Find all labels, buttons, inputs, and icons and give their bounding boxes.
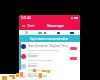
staticText: Chats: [27, 24, 35, 28]
button[interactable]: Video: [38, 32, 42, 34]
staticText: Jaimee: [28, 64, 37, 68]
staticText: Sounds good to me!: [28, 68, 52, 71]
button[interactable]: Dawson: [19, 52, 80, 62]
button[interactable]: Profile: [25, 31, 28, 34]
button[interactable]: Menu: [22, 25, 25, 27]
staticText: What do you think of this?: [28, 48, 59, 51]
button[interactable]: Ellie Fredericks: [19, 72, 80, 80]
button[interactable]: Messages: [57, 32, 60, 34]
staticText: Yesterday: [28, 72, 38, 74]
staticText: 9:41 AM: [21, 16, 31, 20]
button[interactable]: Open chat: [70, 57, 77, 60]
staticText: Tap to start a new conversation: [30, 37, 69, 41]
staticText: Messenger: [47, 24, 64, 28]
staticText: Ellie Fredericks: [28, 74, 47, 78]
staticText: 11:03 AM: [28, 62, 38, 64]
button[interactable]: Jaimee: [19, 62, 80, 72]
button[interactable]: Nina, Annabelle, Meghan, Peter, Lukas: [19, 42, 80, 52]
button[interactable]: Open chat: [70, 47, 77, 50]
staticText: 12:45 PM: [28, 52, 38, 54]
staticText: Dawson: [28, 54, 39, 58]
staticText: Nina, Annabelle, Meghan, Peter, Lukas: [28, 44, 69, 48]
staticText: I'll be in later tonight: [28, 58, 53, 61]
